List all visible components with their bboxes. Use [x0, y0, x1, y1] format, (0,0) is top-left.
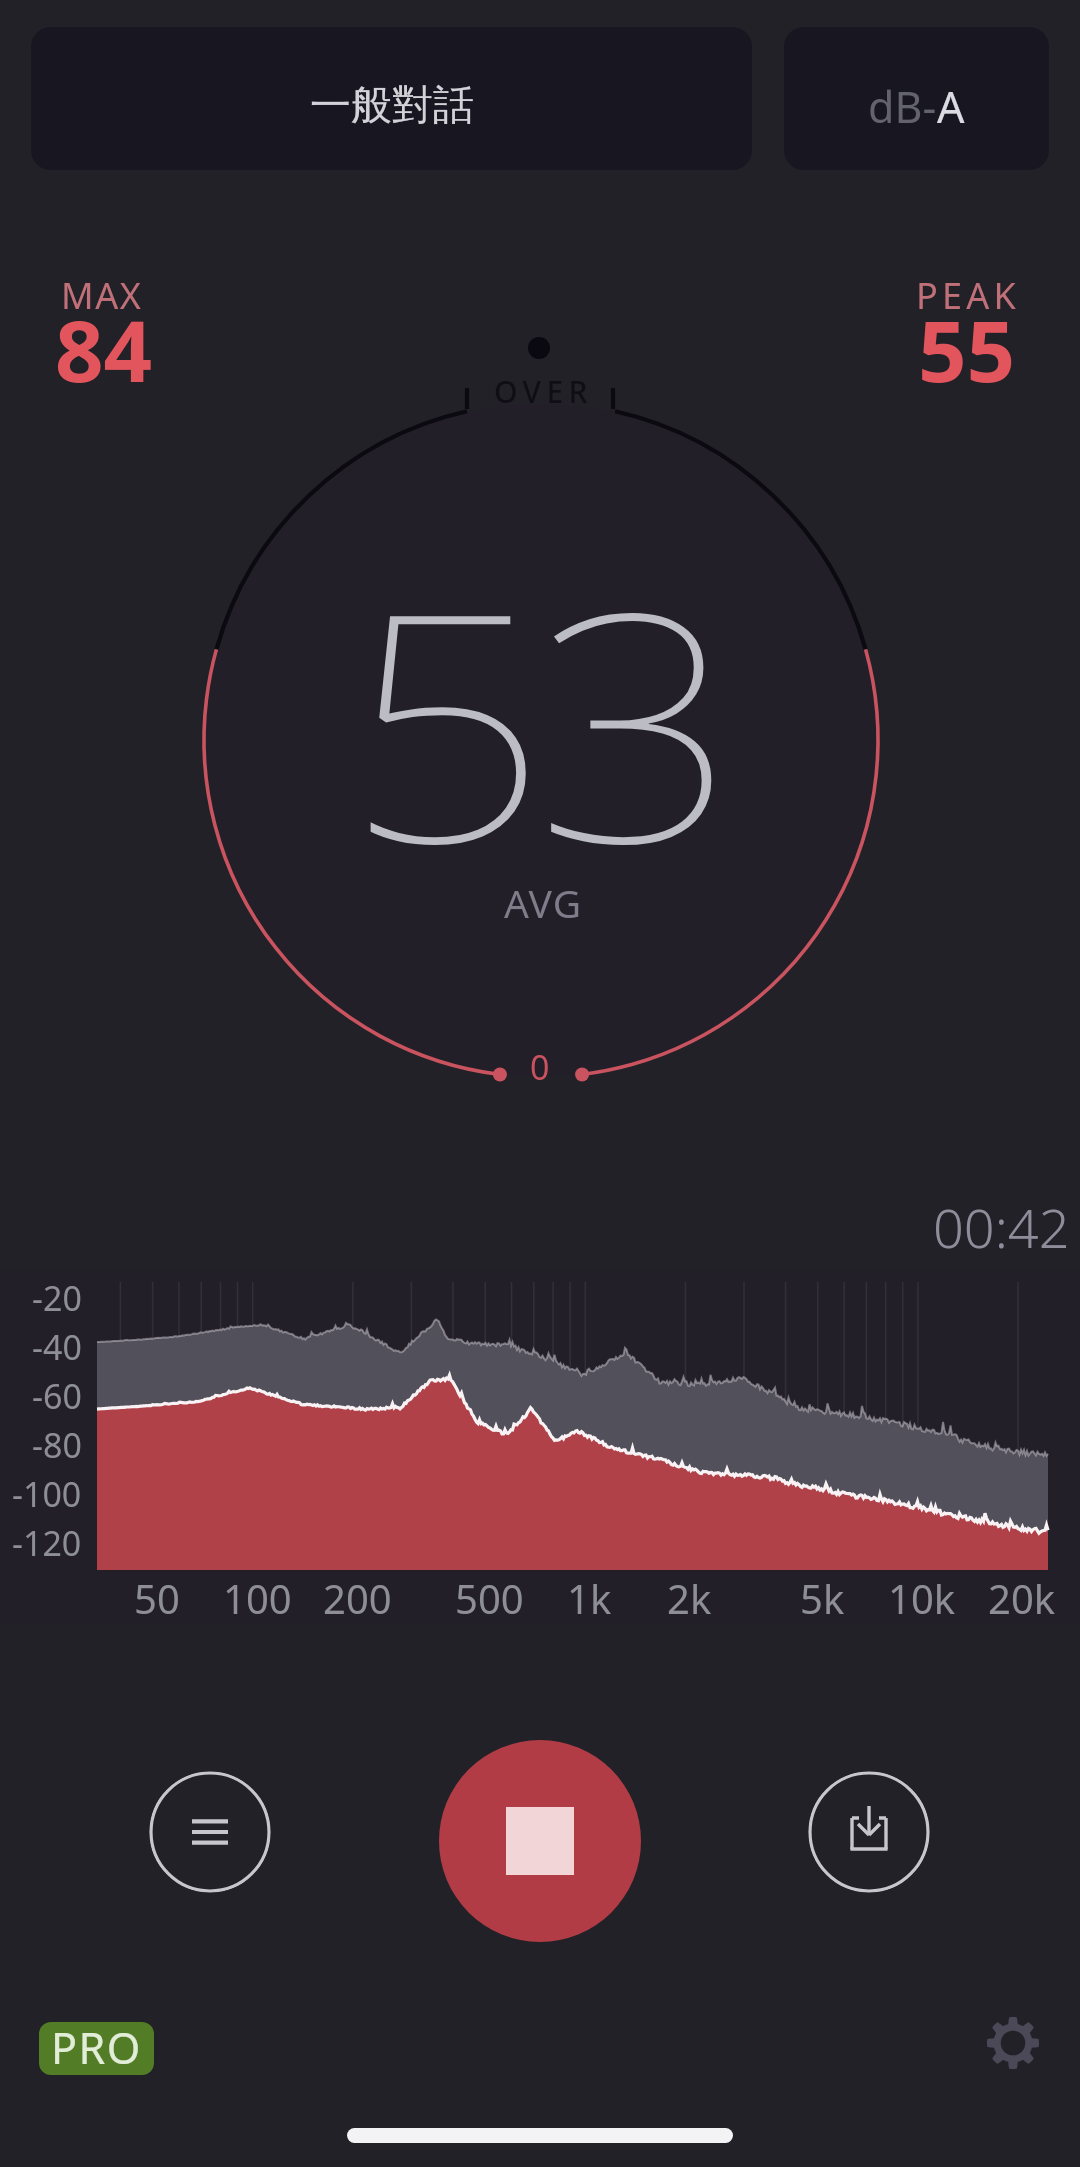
staticText: -60 [32, 1373, 82, 1419]
staticText: PEAK [916, 271, 1020, 320]
button[interactable]: Save recording [808, 1771, 930, 1893]
staticText: A [937, 77, 965, 136]
staticText: OVER [494, 371, 593, 412]
staticText: -40 [32, 1324, 82, 1370]
button[interactable]: PRO [39, 2022, 154, 2075]
staticText: dB- [868, 77, 937, 136]
staticText: 1k [567, 1571, 612, 1625]
button[interactable]: Stop recording [439, 1740, 641, 1942]
staticText: 2k [667, 1571, 712, 1625]
staticText: MAX [61, 271, 143, 320]
staticText: PRO [51, 2022, 142, 2071]
staticText: 100 [223, 1571, 292, 1625]
staticText: 84 [55, 291, 153, 407]
staticText: 55 [918, 291, 1016, 407]
staticText: -20 [32, 1275, 82, 1321]
staticText: -80 [32, 1422, 82, 1468]
button[interactable]: dB- [784, 27, 1049, 170]
staticText: 一般對話 [310, 80, 474, 132]
staticText: 10k [888, 1571, 956, 1625]
staticText: 500 [455, 1571, 524, 1625]
staticText: 0 [530, 1044, 550, 1090]
staticText: 53 [344, 504, 725, 934]
button[interactable]: Menu [149, 1771, 271, 1893]
staticText: -120 [12, 1520, 82, 1566]
staticText: AVG [504, 876, 583, 929]
staticText: 20k [988, 1571, 1056, 1625]
button[interactable]: 一般對話 [31, 27, 752, 170]
staticText: 200 [323, 1571, 392, 1625]
staticText: -100 [12, 1471, 82, 1517]
staticText: 50 [134, 1571, 180, 1625]
staticText: 5k [800, 1571, 845, 1625]
staticText: 00:42 [933, 1190, 1070, 1264]
button[interactable]: Settings [963, 1993, 1063, 2093]
